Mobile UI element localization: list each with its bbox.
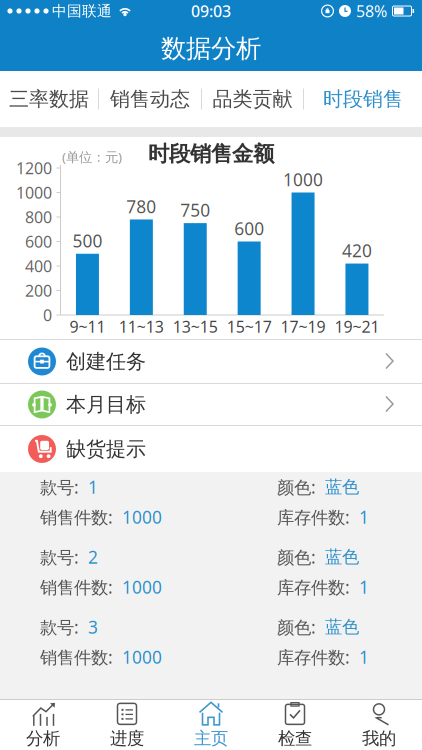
staticText: 库存件数: [277,505,350,528]
staticText: 主页 [194,728,228,749]
button[interactable]: 时段销售 [304,71,422,127]
staticText: 500 [72,229,102,252]
button[interactable]: 本月目标 [0,384,422,425]
staticText: 1 [359,505,369,528]
button[interactable]: 我的 [337,700,421,750]
staticText: 时段销售金额 [148,141,274,167]
staticText: 13~15 [173,316,218,337]
staticText: 颜色: [277,475,316,498]
staticText: 创建任务 [66,349,146,374]
staticText: 58% [356,0,387,22]
staticText: 2 [88,545,98,568]
button[interactable]: 销售动态 [99,71,201,127]
button[interactable]: 检查 [253,700,337,750]
staticText: 400 [25,255,52,277]
staticText: 15~17 [227,316,272,337]
button[interactable]: 三率数据 [0,71,98,127]
staticText: 600 [25,231,52,252]
staticText: 750 [180,199,210,222]
staticText: 11~13 [119,316,164,337]
staticText: 780 [126,195,156,218]
staticText: 9~11 [69,316,105,337]
staticText: 200 [25,280,52,301]
staticText: 库存件数: [277,575,350,598]
staticText: 销售件数: [40,645,113,668]
staticText: 款号: [40,475,79,498]
staticText: 17~19 [280,316,325,337]
staticText: 库存件数: [277,645,350,668]
staticText: 1 [88,475,98,498]
staticText: 1200 [16,157,52,179]
staticText: 销售件数: [40,505,113,528]
staticText: 蓝色 [325,616,359,638]
staticText: 09:03 [191,0,231,22]
staticText: 0 [43,304,52,326]
staticText: (单位：元) [62,148,122,166]
staticText: 1 [359,575,369,598]
staticText: 我的 [362,728,396,749]
staticText: 本月目标 [66,392,146,417]
button[interactable]: 缺货提示 [0,426,422,472]
staticText: 1000 [122,505,162,528]
staticText: 1000 [16,182,52,203]
staticText: 进度 [110,728,144,749]
staticText: 检查 [278,728,312,749]
staticText: 19~21 [334,316,379,337]
staticText: 三率数据 [9,87,89,111]
staticText: 分析 [26,728,60,749]
staticText: 时段销售 [323,87,403,111]
staticText: 420 [342,239,372,262]
staticText: 3 [88,615,98,638]
button[interactable]: 分析 [1,700,85,750]
staticText: 1000 [122,645,162,668]
staticText: 销售动态 [110,87,190,111]
staticText: 缺货提示 [66,437,146,461]
staticText: 款号: [40,545,79,568]
staticText: 品类贡献 [212,87,292,111]
staticText: 款号: [40,615,79,638]
button[interactable]: 进度 [85,700,169,750]
staticText: 800 [25,206,52,228]
staticText: 颜色: [277,545,316,568]
button[interactable]: 创建任务 [0,340,422,383]
staticText: 1 [359,645,369,668]
staticText: 颜色: [277,615,316,638]
staticText: 蓝色 [325,546,359,568]
staticText: 600 [234,217,264,240]
staticText: 销售件数: [40,575,113,598]
staticText: 中国联通 [52,2,112,20]
button[interactable]: 品类贡献 [202,71,303,127]
staticText: 1000 [122,575,162,598]
staticText: 1000 [283,168,323,191]
staticText: 蓝色 [325,476,359,498]
staticText: 数据分析 [161,33,261,64]
button[interactable]: 主页 [169,700,253,750]
